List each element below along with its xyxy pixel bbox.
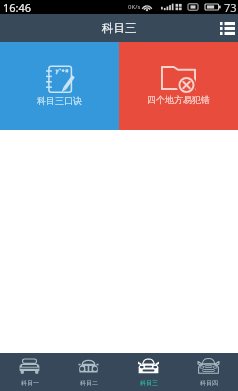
staticText: 科目三: [140, 379, 158, 387]
staticText: 科目三: [102, 21, 137, 35]
staticText: 科目三口诀: [37, 95, 82, 106]
staticText: 16:46: [3, 0, 32, 14]
button[interactable]: 科目一: [0, 353, 59, 391]
button[interactable]: 科目四: [178, 353, 238, 391]
button[interactable]: 科目二: [59, 353, 118, 391]
staticText: 四个地方易犯错: [147, 94, 210, 105]
staticText: 科目二: [80, 379, 98, 387]
button[interactable]: 科目三: [118, 353, 178, 391]
staticText: 科目一: [21, 379, 39, 387]
button[interactable]: 科目三口诀: [0, 42, 119, 130]
button[interactable]: Menu: [216, 17, 238, 39]
button[interactable]: 四个地方易犯错: [119, 42, 238, 130]
staticText: 科目四: [200, 379, 218, 387]
staticText: 0K/s: [128, 3, 141, 11]
staticText: 73: [224, 0, 237, 14]
